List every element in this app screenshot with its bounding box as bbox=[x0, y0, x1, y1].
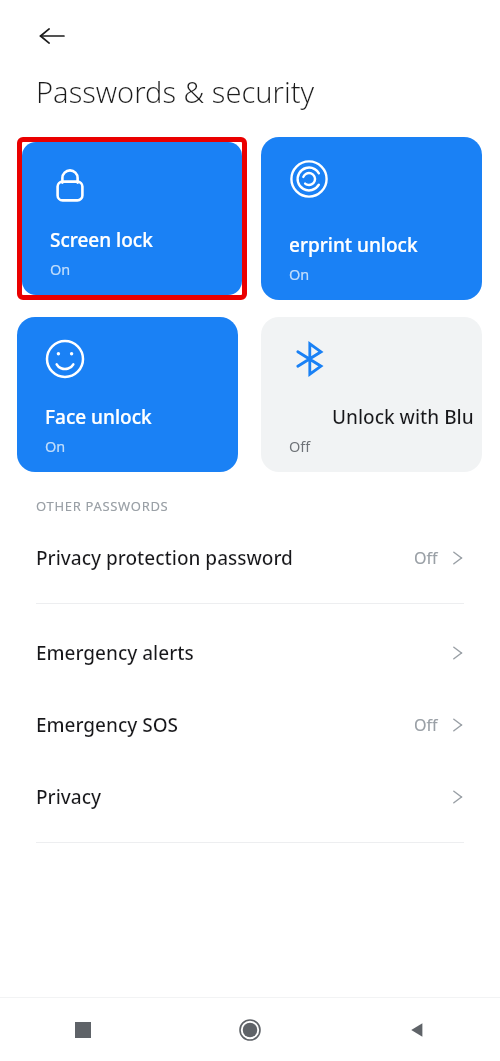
staticText: Off bbox=[289, 436, 311, 456]
staticText: Unlock with Blu bbox=[332, 404, 474, 430]
button[interactable]: Privacy protection password bbox=[0, 537, 500, 579]
button[interactable]: Emergency alerts bbox=[0, 632, 500, 674]
staticText: On bbox=[289, 264, 310, 284]
button[interactable]: Unlock with Blu bbox=[261, 317, 482, 472]
staticText: Face unlock bbox=[45, 404, 152, 430]
staticText: Privacy protection password bbox=[36, 545, 293, 571]
staticText: Off bbox=[414, 714, 438, 736]
button[interactable]: Screen lock bbox=[22, 142, 242, 295]
staticText: Off bbox=[414, 547, 438, 569]
button[interactable]: Back bbox=[333, 998, 500, 1061]
button[interactable]: Emergency SOS bbox=[0, 704, 500, 746]
staticText: Passwords & security bbox=[36, 72, 315, 111]
button[interactable]: Recent apps bbox=[0, 998, 166, 1061]
button[interactable]: erprint unlock bbox=[261, 137, 482, 300]
staticText: Emergency alerts bbox=[36, 640, 194, 666]
staticText: On bbox=[45, 436, 66, 456]
staticText: Privacy bbox=[36, 784, 101, 810]
staticText: Emergency SOS bbox=[36, 712, 179, 738]
button[interactable]: Back bbox=[30, 14, 74, 58]
staticText: On bbox=[50, 259, 71, 279]
staticText: OTHER PASSWORDS bbox=[36, 497, 169, 515]
staticText: erprint unlock bbox=[289, 232, 418, 258]
button[interactable]: Face unlock bbox=[17, 317, 238, 472]
staticText: Screen lock bbox=[50, 227, 153, 253]
button[interactable]: Home bbox=[166, 998, 333, 1061]
button[interactable]: Privacy bbox=[0, 776, 500, 818]
